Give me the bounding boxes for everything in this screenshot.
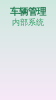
staticText: 内部系统 xyxy=(12,17,44,27)
staticText: 车辆管理 xyxy=(10,6,46,17)
